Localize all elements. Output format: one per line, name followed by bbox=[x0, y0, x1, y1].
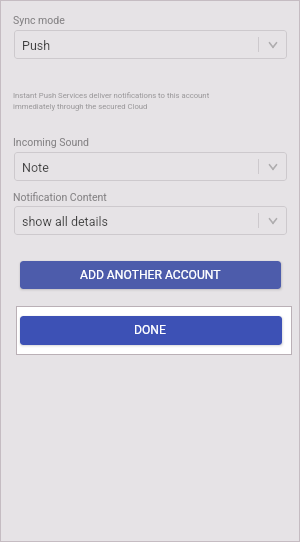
staticText: show all details bbox=[22, 214, 109, 229]
staticText: Push bbox=[22, 38, 51, 53]
staticText: Instant Push Services deliver notificati… bbox=[13, 91, 216, 111]
button[interactable]: ADD ANOTHER ACCOUNT bbox=[20, 261, 281, 289]
button[interactable]: DONE bbox=[20, 316, 282, 345]
button[interactable]: Note bbox=[14, 152, 287, 181]
staticText: Notification Content bbox=[13, 191, 107, 203]
button[interactable]: Push bbox=[14, 30, 287, 59]
staticText: DONE bbox=[134, 323, 166, 337]
staticText: ADD ANOTHER ACCOUNT bbox=[80, 268, 221, 282]
staticText: Sync mode bbox=[13, 14, 65, 26]
staticText: Incoming Sound bbox=[13, 136, 89, 148]
button[interactable]: show all details bbox=[14, 206, 287, 235]
staticText: Note bbox=[22, 160, 49, 175]
